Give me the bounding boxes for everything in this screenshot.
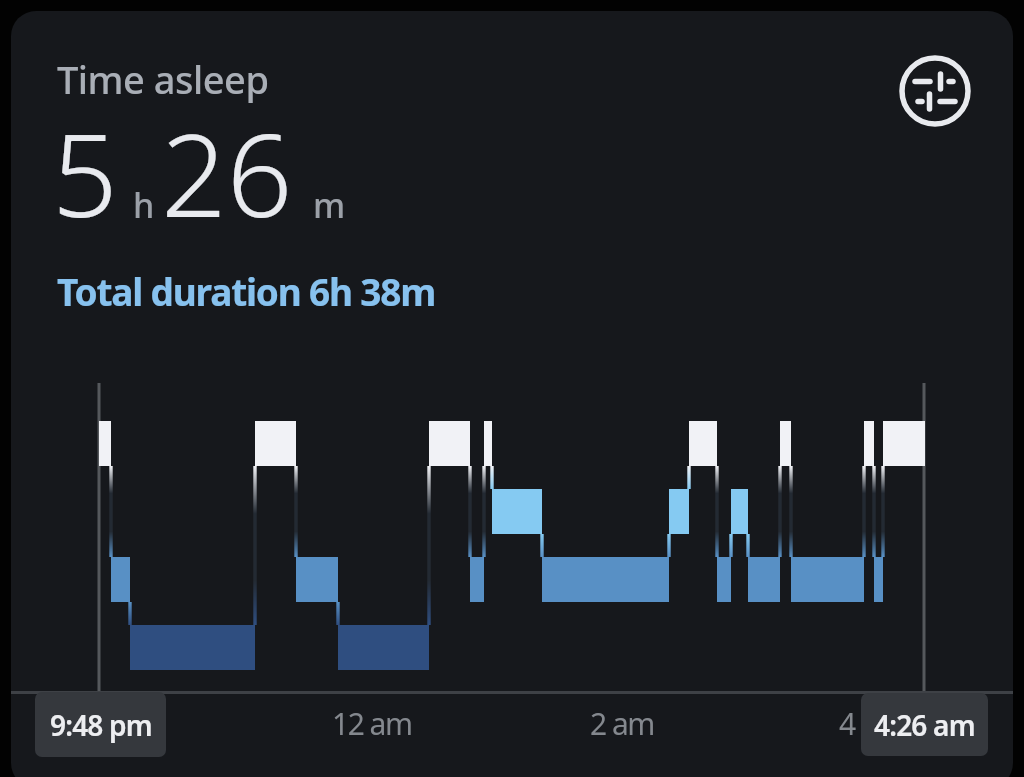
staticText: 4 am <box>839 703 903 744</box>
staticText: 5 <box>52 94 118 251</box>
staticText: Total duration 6h 38m <box>57 266 436 316</box>
button[interactable]: 9:48 pm <box>35 692 166 757</box>
staticText: m <box>313 182 346 228</box>
staticText: Time asleep <box>57 53 269 105</box>
staticText: 2 am <box>590 703 654 744</box>
button[interactable] <box>895 51 975 131</box>
staticText: 12 am <box>332 703 412 744</box>
staticText: 26 <box>161 94 293 251</box>
staticText: 9:48 pm <box>50 706 152 744</box>
button[interactable]: 4:26 am <box>861 693 988 756</box>
staticText: h <box>133 182 155 228</box>
staticText: 4:26 am <box>874 706 975 744</box>
